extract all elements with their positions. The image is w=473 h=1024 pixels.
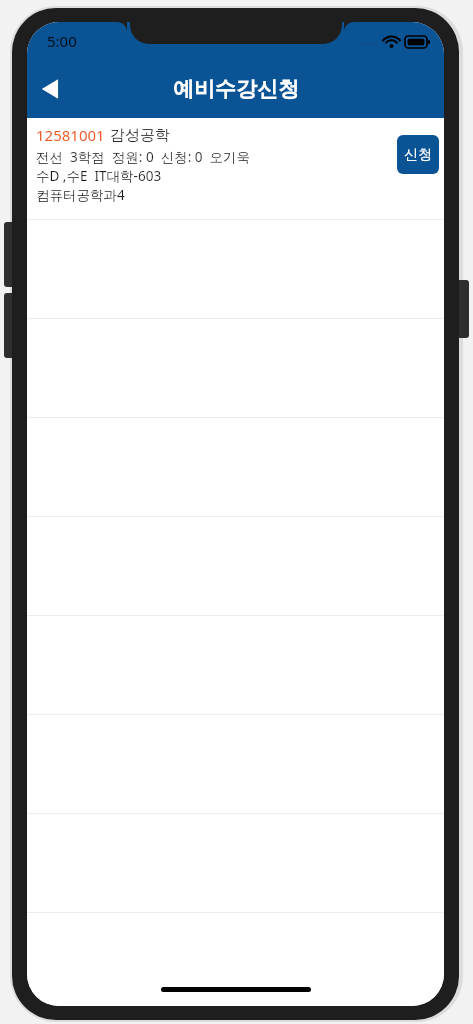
staticText: 5:00	[47, 31, 77, 51]
button[interactable]: Back	[27, 65, 75, 113]
button[interactable]: 신청	[397, 135, 439, 174]
staticText: 예비수강신청	[173, 76, 299, 102]
staticText: 신청	[404, 146, 432, 164]
staticText: 수D ,수E IT대학-603	[36, 167, 162, 185]
staticText: 12581001	[36, 125, 105, 145]
staticText: 컴퓨터공학과4	[36, 186, 125, 204]
staticText: 전선 3학점 정원: 0 신청: 0 오기욱	[36, 148, 251, 166]
button[interactable]: 12581001	[27, 118, 444, 219]
staticText: 감성공학	[110, 126, 170, 145]
